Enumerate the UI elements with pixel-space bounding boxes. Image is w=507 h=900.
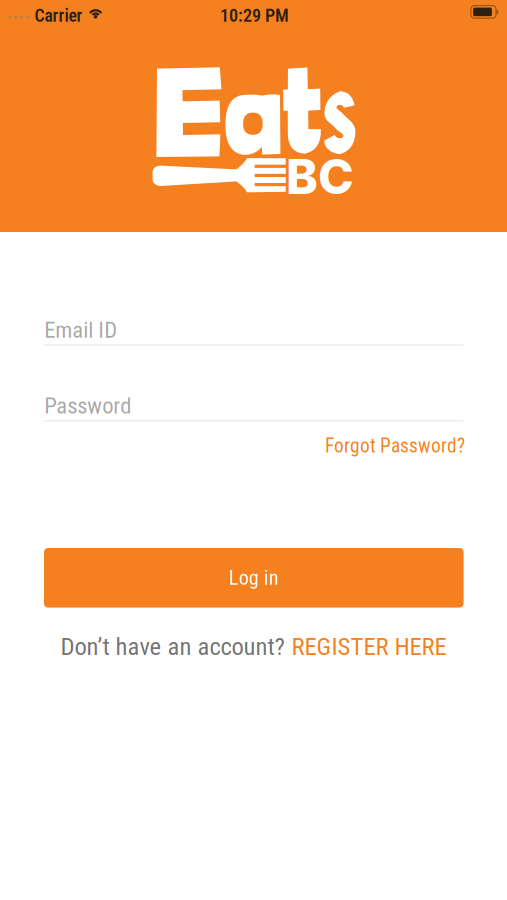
staticText: REGISTER HERE [291, 632, 446, 661]
button[interactable]: Forgot Password? [325, 431, 465, 461]
staticText: Don’t have an account? [60, 632, 284, 661]
staticText: Log in [229, 566, 279, 589]
button[interactable]: Don’t have an account? [0, 629, 507, 663]
staticText: Email ID [44, 317, 117, 343]
staticText: Carrier [35, 5, 83, 26]
staticText: 10:29 PM [220, 5, 289, 26]
staticText: Password [44, 392, 131, 419]
staticText: Forgot Password? [325, 435, 465, 457]
button[interactable]: Log in [44, 548, 464, 608]
staticText: BC [286, 147, 354, 206]
